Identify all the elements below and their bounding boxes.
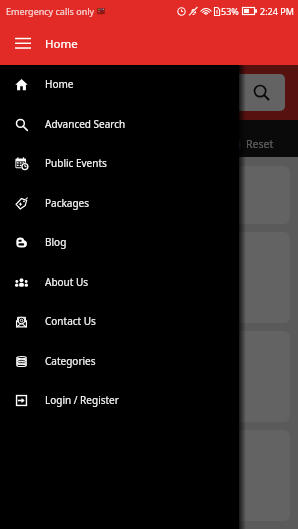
- button[interactable]: Contact Us: [0, 301, 239, 340]
- staticText: Home: [45, 77, 74, 91]
- button[interactable]: Reset filters: [227, 137, 274, 151]
- button[interactable]: Login / Register: [0, 380, 239, 419]
- button[interactable]: Search: [13, 74, 285, 111]
- button[interactable]: [8, 430, 290, 521]
- staticText: Emergency calls only: [6, 5, 95, 17]
- button[interactable]: [8, 232, 290, 323]
- staticText: Public Events: [45, 156, 107, 170]
- staticText: Categories: [45, 354, 96, 368]
- button[interactable]: Blog: [0, 222, 239, 261]
- staticText: About Us: [45, 275, 89, 289]
- staticText: Reset: [246, 137, 274, 151]
- staticText: Login / Register: [45, 393, 119, 407]
- button[interactable]: [8, 166, 290, 224]
- button[interactable]: Public Events: [0, 143, 239, 182]
- staticText: Advanced Search: [45, 117, 126, 131]
- staticText: 53%: [221, 5, 239, 17]
- button[interactable]: About Us: [0, 262, 239, 301]
- button[interactable]: Advanced Search: [0, 104, 239, 143]
- staticText: Contact Us: [45, 314, 96, 328]
- staticText: Home: [45, 36, 78, 52]
- other: Search: [253, 84, 270, 101]
- button[interactable]: Categories: [0, 341, 239, 380]
- staticText: 2:24 PM: [260, 5, 294, 17]
- button[interactable]: Open navigation drawer: [10, 31, 36, 57]
- button[interactable]: [8, 331, 290, 422]
- staticText: Blog: [45, 235, 67, 249]
- button[interactable]: Packages: [0, 183, 239, 222]
- other: Reset filters: [227, 138, 240, 151]
- staticText: Packages: [45, 196, 89, 210]
- button[interactable]: Home: [0, 64, 239, 103]
